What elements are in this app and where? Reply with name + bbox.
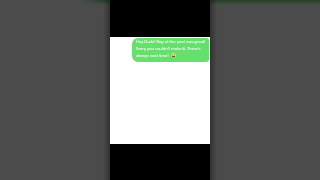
button[interactable]: Hey Dude! Day at the pool was great! Sor… <box>132 38 209 62</box>
staticText: Hey Dude! Day at the pool was great! Sor… <box>136 39 206 58</box>
other: Grinning face emoji <box>171 53 176 58</box>
